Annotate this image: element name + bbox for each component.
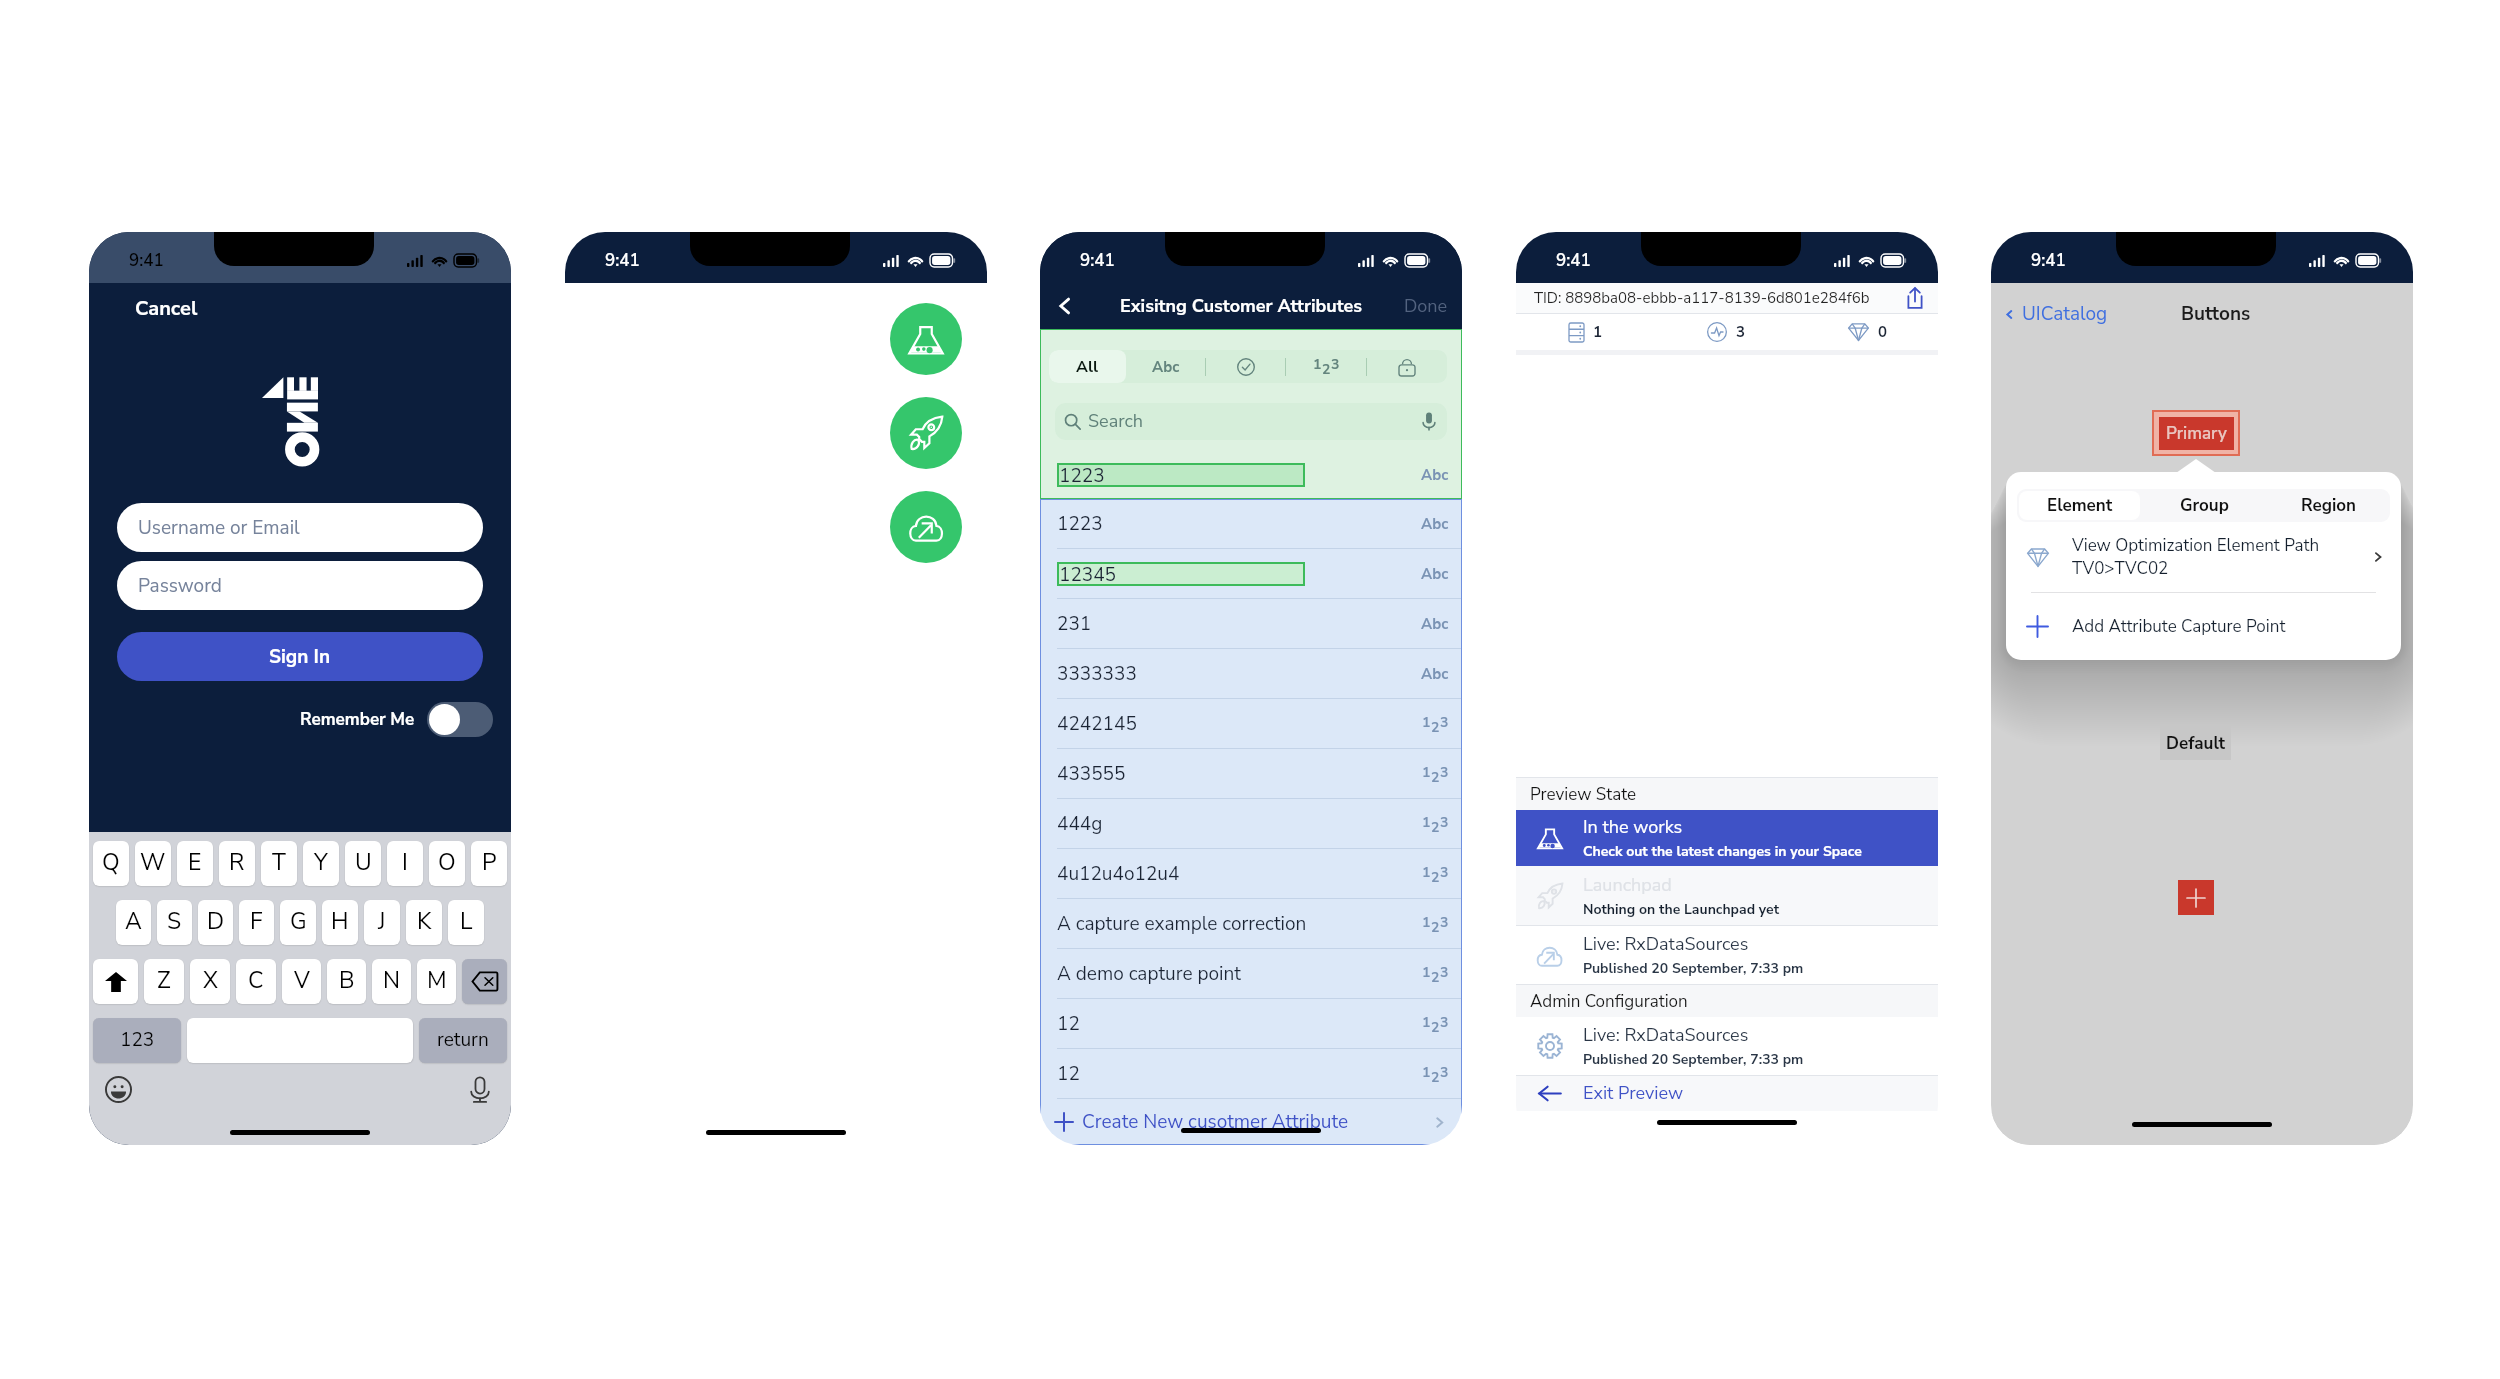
- button[interactable]: A: [116, 900, 151, 945]
- staticText: Cancel: [135, 295, 198, 322]
- button[interactable]: Live: RxDataSources: [1516, 926, 1938, 984]
- button[interactable]: In the works: [890, 303, 962, 375]
- staticText: 3: [1736, 322, 1746, 342]
- button[interactable]: Element: [2019, 491, 2140, 520]
- button[interactable]: Add: [2178, 880, 2214, 915]
- button[interactable]: 12: [1040, 999, 1462, 1049]
- button[interactable]: O: [429, 841, 465, 886]
- button[interactable]: G: [280, 900, 316, 945]
- button[interactable]: R: [219, 841, 255, 886]
- button[interactable]: 433555: [1040, 749, 1462, 799]
- button[interactable]: Publish live: [890, 491, 962, 563]
- staticText: 4242145: [1057, 711, 1137, 737]
- button[interactable]: I: [387, 841, 423, 886]
- button[interactable]: Sign In: [117, 632, 483, 681]
- button[interactable]: Exit Preview: [1516, 1076, 1938, 1111]
- button[interactable]: Dictation: [469, 1076, 491, 1103]
- button[interactable]: Cancel: [131, 291, 202, 326]
- button[interactable]: Q: [93, 841, 129, 886]
- button[interactable]: M: [417, 959, 456, 1004]
- button[interactable]: Username or Email: [117, 503, 483, 552]
- button[interactable]: Locked filter: [1367, 350, 1447, 383]
- button[interactable]: Primary: [2159, 417, 2234, 450]
- button[interactable]: T: [261, 841, 297, 886]
- staticText: 9:41: [1556, 249, 1591, 272]
- button[interactable]: Region: [2266, 489, 2390, 522]
- button[interactable]: Z: [144, 959, 184, 1004]
- button[interactable]: 444g: [1040, 799, 1462, 849]
- staticText: P: [482, 847, 497, 878]
- button[interactable]: 1223: [1040, 499, 1462, 549]
- staticText: 3: [1440, 963, 1449, 982]
- button[interactable]: Add Attribute Capture Point: [2027, 593, 2385, 660]
- staticText: I: [402, 847, 408, 878]
- button[interactable]: Back: [1050, 291, 1080, 321]
- button[interactable]: return: [419, 1018, 507, 1063]
- button[interactable]: L: [448, 900, 484, 945]
- button[interactable]: Password: [117, 561, 483, 610]
- staticText: 9:41: [1080, 249, 1115, 272]
- button[interactable]: A capture example correction: [1040, 899, 1462, 949]
- button[interactable]: V: [282, 959, 321, 1004]
- button[interactable]: Create New cusotmer Attribute: [1055, 1099, 1447, 1145]
- button[interactable]: E: [177, 841, 213, 886]
- button[interactable]: 1223: [1057, 463, 1449, 487]
- staticText: O: [438, 847, 456, 878]
- button[interactable]: Search: [1055, 403, 1447, 440]
- button[interactable]: Shift: [93, 959, 138, 1004]
- button[interactable]: Emoji: [105, 1076, 132, 1103]
- button[interactable]: 4242145: [1040, 699, 1462, 749]
- button[interactable]: View Optimization Element Path: [2027, 522, 2385, 592]
- button[interactable]: 12345: [1040, 549, 1462, 599]
- button[interactable]: Default: [2160, 726, 2231, 760]
- button[interactable]: 1: [1516, 314, 1656, 350]
- button[interactable]: F: [239, 900, 274, 945]
- button[interactable]: 123: [93, 1018, 181, 1063]
- button[interactable]: Y: [303, 841, 339, 886]
- button[interactable]: 3: [1656, 314, 1797, 350]
- button[interactable]: B: [327, 959, 366, 1004]
- button[interactable]: S: [157, 900, 192, 945]
- button[interactable]: 231: [1040, 599, 1462, 649]
- staticText: Default: [2166, 732, 2226, 755]
- button[interactable]: [427, 702, 493, 737]
- button[interactable]: UICatalog: [2002, 295, 2108, 333]
- button[interactable]: Abc: [1126, 350, 1205, 383]
- button[interactable]: P: [471, 841, 507, 886]
- button[interactable]: Group: [2142, 489, 2266, 522]
- button[interactable]: 12: [1040, 1049, 1462, 1099]
- button[interactable]: W: [135, 841, 171, 886]
- button[interactable]: C: [236, 959, 276, 1004]
- button[interactable]: Done: [1404, 294, 1448, 319]
- staticText: T: [272, 847, 286, 878]
- button[interactable]: Live: RxDataSources: [1516, 1017, 1938, 1075]
- button[interactable]: In the works: [1516, 810, 1938, 866]
- button[interactable]: N: [372, 959, 411, 1004]
- button[interactable]: 3333333: [1040, 649, 1462, 699]
- button[interactable]: D: [198, 900, 233, 945]
- button[interactable]: All: [1049, 350, 1126, 383]
- button[interactable]: X: [190, 959, 230, 1004]
- staticText: 1: [1422, 863, 1431, 882]
- button[interactable]: Launchpad: [1516, 866, 1938, 925]
- button[interactable]: U: [345, 841, 381, 886]
- staticText: N: [383, 965, 401, 996]
- staticText: R: [229, 847, 245, 878]
- button[interactable]: Checkmark filter: [1206, 350, 1285, 383]
- button[interactable]: Launchpad: [890, 397, 962, 469]
- button[interactable]: H: [322, 900, 358, 945]
- button[interactable]: J: [364, 900, 400, 945]
- button[interactable]: Backspace: [462, 959, 507, 1004]
- staticText: Username or Email: [138, 515, 300, 541]
- staticText: 1223: [1059, 463, 1105, 487]
- button[interactable]: 1: [1286, 350, 1366, 383]
- button[interactable]: Share: [1904, 287, 1926, 309]
- staticText: Y: [314, 847, 328, 878]
- button[interactable]: K: [406, 900, 442, 945]
- staticText: Exisitng Customer Attributes: [1120, 294, 1363, 319]
- button[interactable]: A demo capture point: [1040, 949, 1462, 999]
- button[interactable]: 4u12u4o12u4: [1040, 849, 1462, 899]
- button[interactable]: 0: [1797, 314, 1938, 350]
- staticText: 3: [1440, 1013, 1449, 1032]
